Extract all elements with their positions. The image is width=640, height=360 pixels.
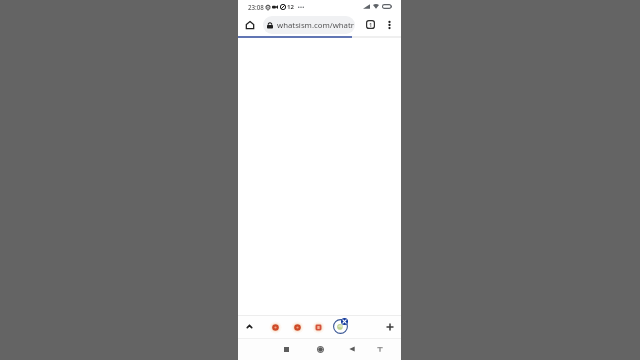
button[interactable]: Recent apps: [277, 340, 295, 358]
button[interactable]: whatsism.com/whatr: [263, 16, 355, 34]
staticText: whatsism.com/whatr: [277, 20, 355, 31]
button[interactable]: Active app: [333, 319, 348, 334]
button[interactable]: Home: [240, 14, 260, 35]
button[interactable]: App shortcut: [291, 321, 304, 334]
staticText: 1: [369, 21, 373, 28]
button[interactable]: App shortcut: [312, 321, 325, 334]
button[interactable]: Add: [383, 320, 396, 333]
button[interactable]: App shortcut: [269, 321, 282, 334]
staticText: 12: [287, 3, 294, 11]
button[interactable]: Expand toolbar: [243, 320, 256, 333]
button[interactable]: Back: [343, 340, 361, 358]
staticText: 23:08: [248, 3, 264, 11]
button[interactable]: More options: [381, 14, 397, 35]
button[interactable]: Hide keyboard: [371, 340, 389, 358]
button[interactable]: Switch tabs: [362, 14, 379, 35]
button[interactable]: Home: [311, 340, 329, 358]
